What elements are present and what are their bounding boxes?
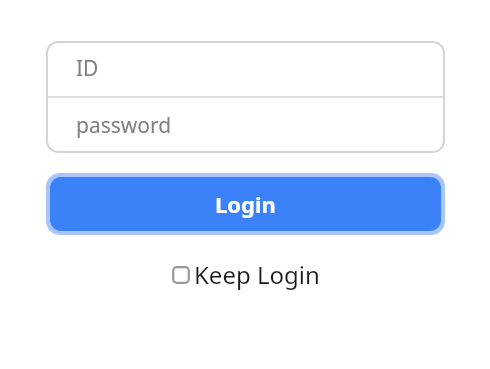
other: Keep Login checkbox (172, 266, 190, 284)
button[interactable]: password (46, 98, 445, 153)
button[interactable]: Login (50, 177, 441, 231)
staticText: Login (215, 189, 276, 219)
button[interactable]: Keep Login checkbox (170, 256, 322, 293)
button[interactable]: ID (46, 41, 445, 96)
staticText: password (76, 111, 172, 140)
staticText: Keep Login (194, 258, 320, 291)
staticText: ID (76, 54, 99, 83)
